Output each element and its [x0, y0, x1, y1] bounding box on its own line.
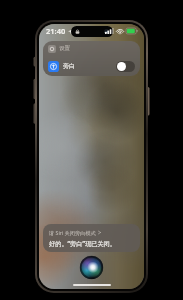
button[interactable]: 旁白 开关 — [116, 61, 135, 72]
button[interactable]: 请 Siri 关闭旁白模式 — [43, 224, 140, 252]
staticText: 21:40 — [46, 26, 66, 36]
button[interactable]: 设置 — [43, 41, 140, 56]
staticText: 好的。“旁白”现已关闭。 — [49, 239, 116, 247]
staticText: 旁白 — [63, 62, 75, 70]
other: Siri — [80, 256, 103, 279]
staticText: 请 Siri 关闭旁白模式 — [49, 229, 96, 236]
button[interactable]: 旁白 — [43, 56, 140, 76]
staticText: 设置 — [59, 45, 70, 52]
